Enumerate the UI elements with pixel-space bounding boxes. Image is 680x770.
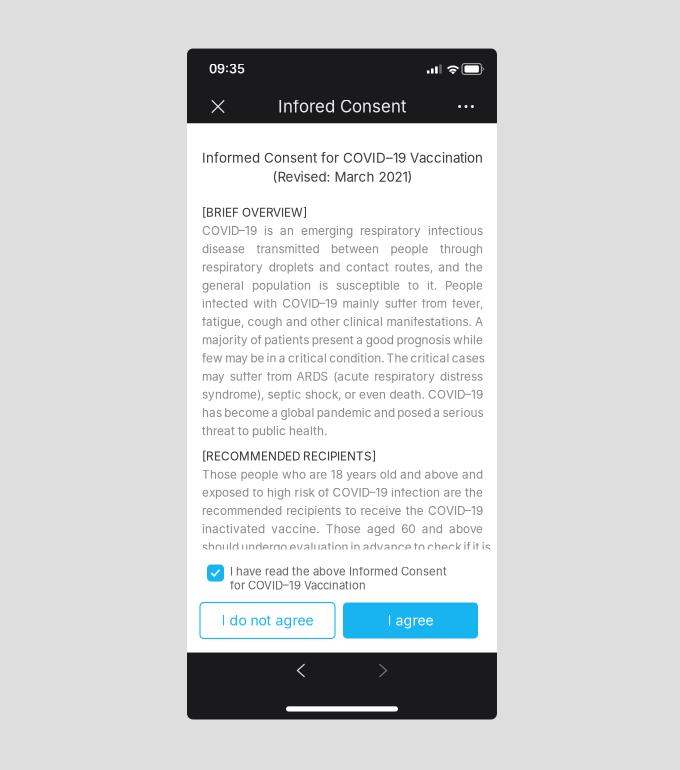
staticText: exposed [202,485,249,500]
staticText: Infored Consent [278,96,406,117]
staticText: distress [440,369,483,383]
staticText: majority [202,333,248,347]
staticText: between [331,242,379,256]
staticText: the [465,485,483,500]
staticText: even [359,387,386,402]
staticText: of [251,333,262,347]
staticText: with [253,296,277,311]
staticText: 60 [401,522,415,536]
staticText: people [390,242,428,256]
button[interactable]: I agree [343,602,478,638]
staticText: I have read the above Informed Consent [230,565,447,578]
staticText: mainly [342,296,379,311]
staticText: present [312,333,354,347]
staticText: critical [288,351,327,365]
button[interactable]: Back [279,655,323,685]
staticText: check [427,540,461,554]
staticText: become [224,406,269,420]
staticText: from [267,369,292,383]
staticText: I do not agree [221,612,313,629]
staticText: above [425,467,459,481]
staticText: is [319,278,328,292]
staticText: COVID–19 [332,485,387,500]
staticText: years [346,467,376,481]
button[interactable]: I do not agree [200,602,335,638]
staticText: vaccine. [271,522,319,536]
staticText: inactivated [202,522,265,536]
staticText: ARDS [296,369,328,383]
staticText: and [438,260,459,274]
staticText: serious [443,406,484,420]
staticText: Informed Consent for COVID–19 Vaccinatio… [202,150,483,166]
staticText: a [356,333,363,347]
staticText: People [445,278,483,292]
staticText: and [422,522,443,536]
staticText: through [440,242,483,256]
staticText: who [282,467,306,481]
staticText: respiratory [360,224,421,238]
staticText: the [465,260,483,274]
staticText: septic [267,387,301,402]
staticText: should [202,540,239,554]
staticText: Those [326,522,361,536]
staticText: of [318,485,329,500]
staticText: (acute [333,369,369,383]
staticText: suffer [385,296,417,311]
staticText: and [462,467,483,481]
staticText: is [482,540,491,554]
staticText: other [310,315,339,329]
staticText: I agree [387,612,433,629]
staticText: syndrome), [202,387,264,402]
staticText: an [280,224,294,238]
staticText: death. [389,387,424,402]
staticText: recipients [286,504,341,518]
staticText: fatigue, [202,315,244,329]
staticText: routes, [395,260,433,274]
staticText: transmitted [256,242,319,256]
staticText: susceptible [336,278,400,292]
staticText: Those [202,467,237,481]
staticText: cases [452,351,485,365]
staticText: droplets [269,260,314,274]
staticText: infected [202,296,248,311]
staticText: if [463,540,470,554]
staticText: cough [247,315,282,329]
staticText: and [286,315,307,329]
staticText: COVID–19 [202,224,257,238]
staticText: emerging [301,224,353,238]
staticText: pandemic [317,406,372,420]
staticText: respiratory [202,260,263,274]
staticText: has [202,406,222,420]
staticText: general [202,278,244,292]
staticText: manifestations. [386,315,471,329]
staticText: to [408,278,419,292]
button[interactable]: I have read the above Informed Consent [187,549,497,602]
button[interactable]: Close [198,89,238,123]
staticText: a [279,351,286,365]
staticText: global [281,406,315,420]
staticText: to [414,540,425,554]
staticText: receive [361,504,402,518]
staticText: people [240,467,278,481]
staticText: [BRIEF OVERVIEW] [202,205,307,220]
staticText: contact [346,260,389,274]
button[interactable]: More options [446,89,486,123]
staticText: in [267,351,277,365]
button[interactable]: Forward [361,655,405,685]
staticText: are [309,467,327,481]
staticText: from [422,296,447,311]
staticText: may [202,369,225,383]
staticText: fever, [452,296,483,311]
staticText: to [252,485,263,500]
staticText: good [366,333,394,347]
staticText: evaluation [289,540,348,554]
staticText: a [433,406,440,420]
staticText: while [453,333,483,347]
staticText: are [443,485,461,500]
staticText: aged [367,522,395,536]
staticText: may [225,351,248,365]
staticText: COVID–19 [428,504,483,518]
staticText: population [252,278,311,292]
staticText: respiratory [374,369,435,383]
staticText: risk [294,485,314,500]
